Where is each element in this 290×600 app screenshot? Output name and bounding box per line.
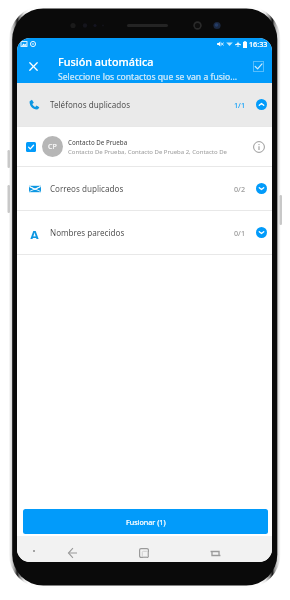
staticText: Contacto De Prueba, Contacto De Prueba 2… [68, 148, 245, 156]
staticText: Contacto De Prueba [68, 138, 128, 146]
staticText: 1/1 [234, 100, 245, 110]
staticText: Seleccione los contactos que se van a fu… [58, 71, 238, 83]
staticText: 16:33 [249, 39, 268, 49]
button[interactable]: Seleccionar todo [247, 49, 269, 83]
staticText: Fusión automática [58, 54, 154, 69]
button[interactable]: Fusionar (1) [23, 509, 268, 534]
staticText: Fusionar (1) [126, 517, 166, 527]
button[interactable]: Aplicaciones recientes [202, 540, 228, 562]
button[interactable]: CP [17, 127, 272, 166]
button[interactable]: Teléfonos duplicados [17, 83, 272, 126]
staticText: 0/2 [234, 184, 245, 194]
button[interactable]: Atrás [59, 540, 85, 562]
button[interactable]: Inicio [131, 540, 157, 562]
staticText: A [30, 226, 39, 239]
button[interactable]: Información del contacto [249, 137, 269, 157]
staticText: Correos duplicados [50, 183, 124, 194]
button[interactable]: A [17, 211, 272, 254]
staticText: Teléfonos duplicados [50, 99, 131, 110]
staticText: Nombres parecidos [50, 227, 125, 238]
button[interactable]: Cerrar [17, 49, 49, 83]
staticText: CP [48, 142, 57, 152]
staticText: 0/1 [234, 228, 245, 238]
button[interactable]: Correos duplicados [17, 167, 272, 210]
